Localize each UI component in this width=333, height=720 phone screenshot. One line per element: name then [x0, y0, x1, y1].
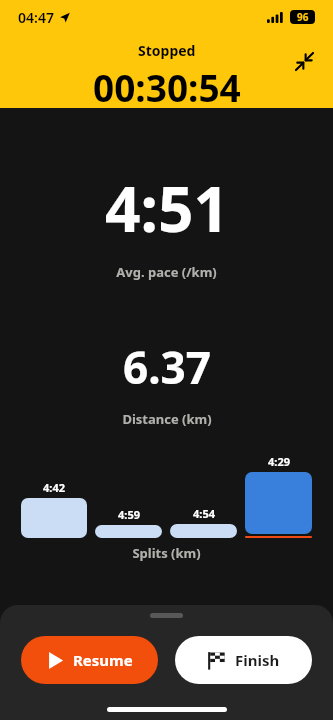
- staticText: 4:42: [43, 480, 65, 495]
- staticText: 00:30:54: [93, 62, 241, 108]
- button[interactable]: [245, 472, 312, 534]
- staticText: Distance (km): [122, 410, 212, 428]
- staticText: 4:29: [268, 454, 290, 469]
- button[interactable]: [170, 524, 237, 538]
- staticText: 4:54: [193, 506, 215, 521]
- staticText: 4:59: [118, 507, 140, 522]
- staticText: 6.37: [123, 337, 211, 397]
- staticText: Resume: [73, 650, 133, 670]
- staticText: 04:47: [18, 8, 54, 27]
- staticText: 4:51: [105, 166, 229, 250]
- button[interactable]: Finish: [175, 636, 312, 684]
- button[interactable]: [95, 525, 162, 538]
- button[interactable]: Resume: [21, 636, 158, 684]
- staticText: 96: [297, 10, 309, 24]
- staticText: Finish: [235, 650, 280, 670]
- button[interactable]: [21, 498, 87, 538]
- button[interactable]: Collapse: [287, 44, 321, 78]
- staticText: Stopped: [138, 41, 196, 60]
- staticText: Avg. pace (/km): [116, 263, 217, 281]
- staticText: Splits (km): [0, 544, 333, 562]
